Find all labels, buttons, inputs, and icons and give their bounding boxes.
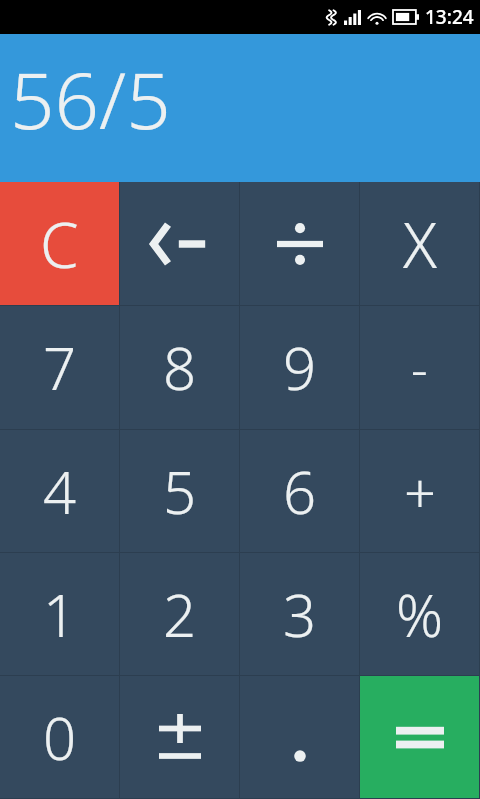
button[interactable]: 4 bbox=[0, 430, 119, 552]
staticText: 56/5 bbox=[10, 46, 171, 152]
staticText: C bbox=[40, 202, 79, 286]
button[interactable]: 5 bbox=[120, 430, 239, 552]
staticText: 3 bbox=[283, 575, 317, 654]
staticText: 0 bbox=[43, 698, 77, 777]
staticText: 5 bbox=[163, 452, 197, 531]
staticText: 7 bbox=[43, 328, 77, 407]
staticText: X bbox=[403, 202, 437, 286]
button[interactable]: 2 bbox=[120, 553, 239, 675]
staticText: % bbox=[396, 575, 444, 654]
staticText: 1 bbox=[43, 575, 77, 654]
button[interactable]: 8 bbox=[120, 306, 239, 429]
staticText: 2 bbox=[163, 575, 197, 654]
button[interactable]: X bbox=[360, 182, 479, 305]
button[interactable]: 1 bbox=[0, 553, 119, 675]
button[interactable]: C bbox=[0, 182, 119, 305]
button[interactable]: Decimal point bbox=[240, 676, 359, 798]
staticText: 8 bbox=[163, 328, 197, 407]
button[interactable]: 0 bbox=[0, 676, 119, 798]
button[interactable]: 6 bbox=[240, 430, 359, 552]
button[interactable]: + bbox=[360, 430, 479, 552]
staticText: + bbox=[404, 453, 436, 529]
staticText: 6 bbox=[283, 452, 317, 531]
staticText: 4 bbox=[43, 452, 77, 531]
staticText: 13:24 bbox=[425, 4, 474, 30]
staticText: - bbox=[411, 332, 428, 403]
button[interactable]: Divide bbox=[240, 182, 359, 305]
button[interactable]: 3 bbox=[240, 553, 359, 675]
button[interactable]: Plus minus bbox=[120, 676, 239, 798]
button[interactable]: % bbox=[360, 553, 479, 675]
button[interactable]: 9 bbox=[240, 306, 359, 429]
staticText: 9 bbox=[283, 328, 317, 407]
button[interactable]: Backspace bbox=[120, 182, 239, 305]
button[interactable]: 7 bbox=[0, 306, 119, 429]
button[interactable]: - bbox=[360, 306, 479, 429]
button[interactable]: Equals bbox=[360, 676, 479, 798]
